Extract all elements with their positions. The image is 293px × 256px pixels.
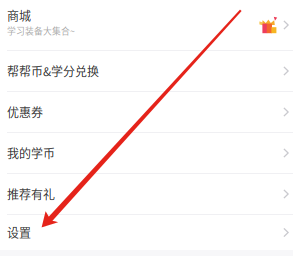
button[interactable]: 设置 bbox=[0, 215, 293, 250]
button[interactable]: 帮帮币&学分兑换 bbox=[0, 51, 293, 91]
button[interactable]: 推荐有礼 bbox=[0, 174, 293, 214]
button[interactable]: 我的学币 bbox=[0, 133, 293, 173]
staticText: 商城 bbox=[7, 7, 31, 24]
staticText: 优惠券 bbox=[7, 103, 43, 121]
staticText: 我的学币 bbox=[7, 144, 55, 162]
staticText: 设置 bbox=[7, 224, 31, 241]
button[interactable]: 商城 bbox=[0, 0, 293, 50]
staticText: 推荐有礼 bbox=[7, 185, 55, 203]
staticText: 帮帮币&学分兑换 bbox=[7, 62, 99, 80]
staticText: 学习装备大集合~ bbox=[7, 24, 75, 37]
button[interactable]: 优惠券 bbox=[0, 92, 293, 132]
